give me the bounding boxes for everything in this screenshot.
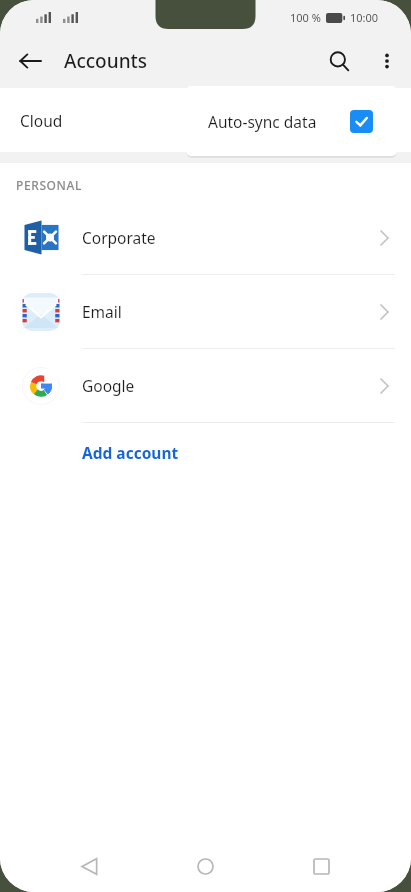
button[interactable]: Home: [179, 840, 231, 892]
other: Auto-sync data enabled: [350, 110, 373, 133]
staticText: Email: [82, 301, 122, 322]
staticText: Google: [82, 375, 135, 396]
button[interactable]: Add account: [0, 423, 411, 481]
button[interactable]: Google: [0, 349, 411, 422]
staticText: Accounts: [64, 48, 148, 74]
button[interactable]: Email: [0, 275, 411, 348]
button[interactable]: Search: [315, 37, 363, 85]
staticText: Auto-sync data: [208, 111, 317, 132]
staticText: Cloud: [20, 110, 63, 131]
button[interactable]: Cloud: [0, 88, 411, 152]
staticText: 10:00: [350, 10, 379, 25]
button[interactable]: Back: [63, 840, 115, 892]
button[interactable]: Auto-sync data: [186, 86, 397, 156]
staticText: PERSONAL: [16, 177, 82, 193]
staticText: Add account: [82, 442, 179, 463]
button[interactable]: More options: [363, 37, 411, 85]
button[interactable]: Recent apps: [295, 840, 347, 892]
staticText: Corporate: [82, 227, 156, 248]
staticText: 100 %: [290, 10, 321, 25]
button[interactable]: Corporate: [0, 201, 411, 274]
button[interactable]: Back: [8, 39, 52, 83]
